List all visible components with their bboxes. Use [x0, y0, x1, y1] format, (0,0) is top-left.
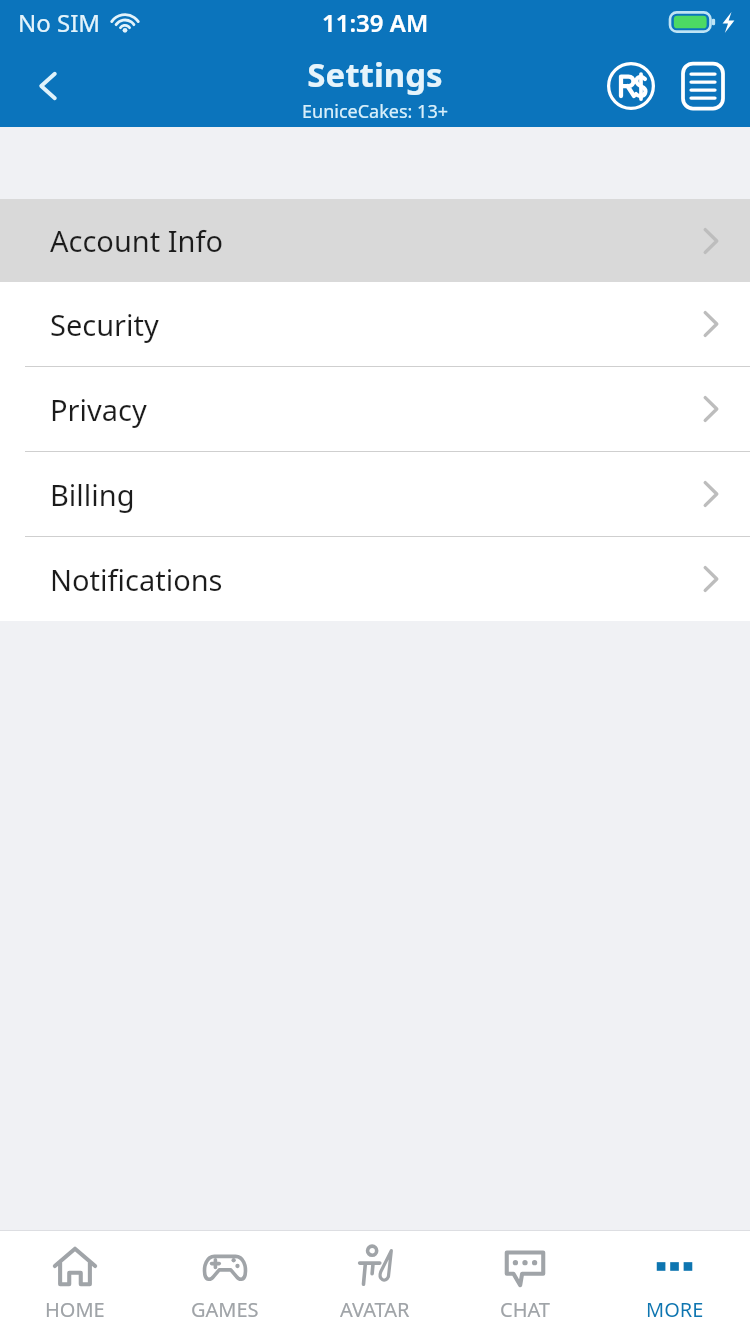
button[interactable]: Privacy — [0, 367, 750, 451]
button[interactable]: MORE — [600, 1231, 750, 1334]
staticText: Notifications — [50, 560, 223, 599]
staticText: GAMES — [191, 1296, 259, 1323]
button[interactable]: Back — [12, 50, 84, 122]
button[interactable]: AVATAR — [300, 1231, 450, 1334]
button[interactable]: GAMES — [150, 1231, 300, 1334]
button[interactable]: Notifications — [0, 537, 750, 621]
button[interactable]: Billing — [0, 452, 750, 536]
button[interactable]: Security — [0, 282, 750, 366]
staticText: Privacy — [50, 390, 147, 429]
staticText: HOME — [45, 1296, 105, 1323]
button[interactable]: CHAT — [450, 1231, 600, 1334]
staticText: Settings — [307, 52, 443, 97]
button[interactable]: HOME — [0, 1231, 150, 1334]
staticText: No SIM — [18, 6, 101, 39]
staticText: CHAT — [500, 1296, 550, 1323]
staticText: MORE — [646, 1296, 704, 1323]
button[interactable]: Menu — [674, 57, 732, 115]
staticText: EuniceCakes: 13+ — [302, 99, 448, 124]
staticText: Security — [50, 305, 159, 344]
staticText: Account Info — [50, 221, 224, 260]
button[interactable]: Account Info — [0, 199, 750, 282]
button[interactable]: Robux — [602, 57, 660, 115]
staticText: 11:39 AM — [322, 6, 429, 39]
staticText: Billing — [50, 475, 135, 514]
staticText: AVATAR — [340, 1296, 410, 1323]
